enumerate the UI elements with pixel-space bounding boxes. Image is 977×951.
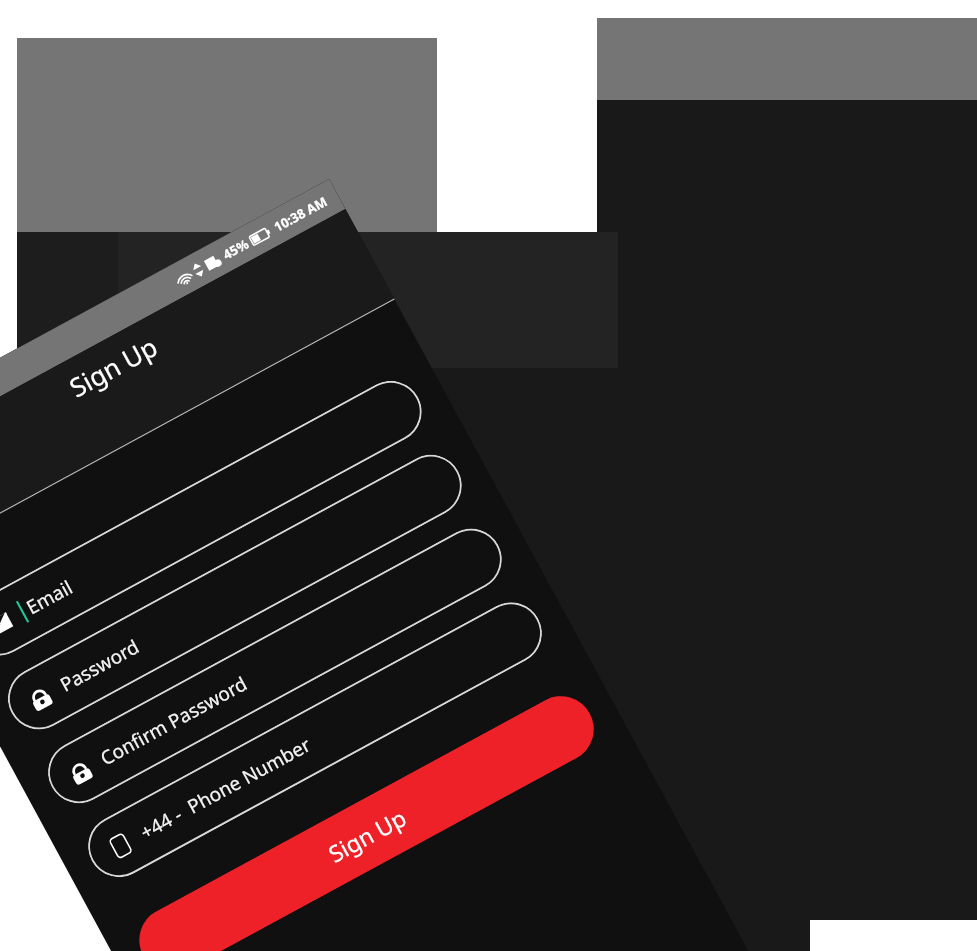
staticText: +44 - Phone Number bbox=[136, 732, 315, 845]
staticText: Email bbox=[22, 574, 77, 620]
staticText: Confirm Password bbox=[96, 670, 252, 771]
button[interactable]: Confirm Password bbox=[37, 517, 513, 814]
staticText: Sign Up bbox=[63, 328, 163, 404]
button[interactable]: +44 - Phone Number bbox=[77, 591, 553, 888]
staticText: 10:38 AM bbox=[271, 192, 331, 236]
button[interactable]: Password bbox=[0, 444, 473, 740]
staticText: 45% bbox=[220, 235, 252, 263]
button[interactable]: Email bbox=[0, 370, 433, 667]
staticText: Password bbox=[55, 634, 143, 697]
staticText: Sign Up bbox=[322, 801, 411, 869]
button[interactable]: Sign Up bbox=[128, 684, 605, 951]
